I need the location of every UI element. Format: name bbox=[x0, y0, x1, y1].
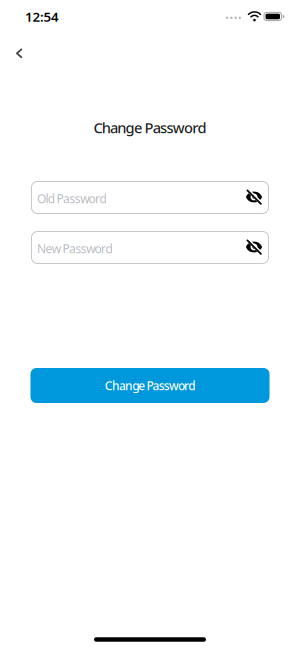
staticText: Change Password bbox=[93, 118, 207, 137]
staticText: 12:54 bbox=[25, 8, 59, 25]
button[interactable]: Show password bbox=[245, 190, 269, 205]
button[interactable]: Show password bbox=[245, 240, 269, 255]
staticText: New Password bbox=[37, 240, 112, 256]
staticText: Old Password bbox=[37, 190, 106, 206]
button[interactable]: Back bbox=[2, 36, 36, 70]
staticText: Change Password bbox=[105, 377, 195, 393]
button[interactable]: Change Password bbox=[30, 368, 269, 403]
